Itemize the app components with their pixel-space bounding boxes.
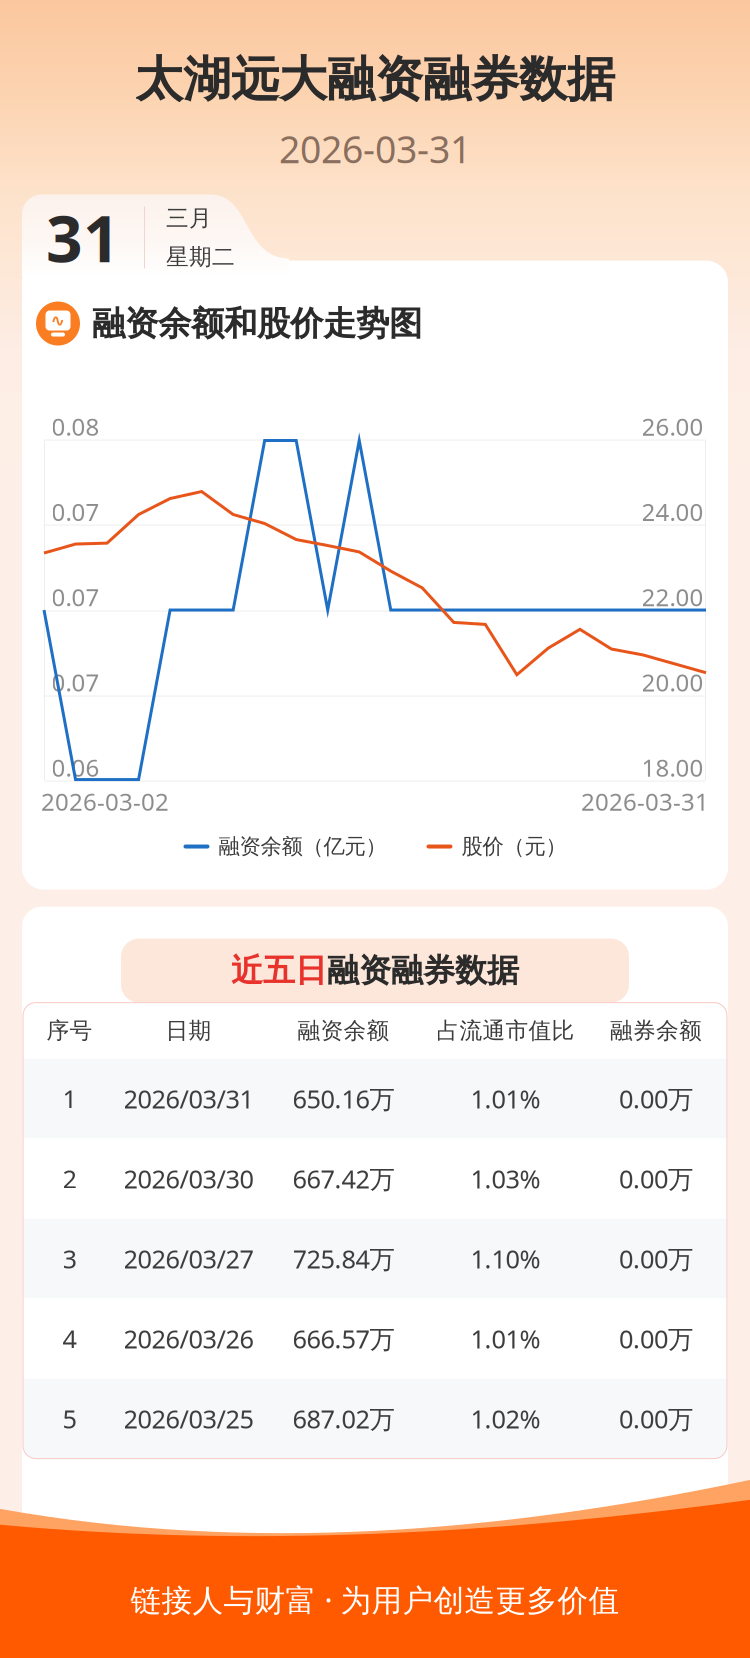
staticText: 2026/03/31 [123, 1082, 253, 1115]
staticText: 2026-03-31 [279, 124, 471, 174]
staticText: 650.16万 [292, 1082, 394, 1115]
staticText: 股价（元） [461, 833, 566, 860]
staticText: 666.57万 [292, 1322, 394, 1355]
staticText: 1.02% [470, 1402, 540, 1435]
staticText: 0.00万 [619, 1402, 693, 1435]
staticText: 1.10% [470, 1242, 540, 1275]
staticText: 2026-03-02 [41, 785, 169, 817]
staticText: 5 [62, 1402, 76, 1435]
staticText: 2026-03-31 [581, 785, 709, 817]
staticText: ∿ [50, 311, 65, 330]
staticText: 2026/03/25 [123, 1402, 253, 1435]
staticText: 2026/03/27 [123, 1242, 253, 1275]
staticText: 融券余额 [610, 1017, 702, 1044]
staticText: 序号 [46, 1017, 92, 1044]
staticText: 0.00万 [619, 1082, 693, 1115]
staticText: 1 [62, 1082, 76, 1115]
staticText: 0.00万 [619, 1162, 693, 1195]
staticText: 31 [46, 195, 120, 280]
staticText: 融资余额 [297, 1017, 389, 1044]
staticText: 4 [62, 1322, 76, 1355]
staticText: 0.06 [51, 752, 99, 783]
staticText: 687.02万 [292, 1402, 394, 1435]
staticText: 0.07 [51, 496, 99, 528]
staticText: 667.42万 [292, 1162, 394, 1195]
staticText: 725.84万 [292, 1242, 394, 1275]
staticText: 占流通市值比 [436, 1017, 574, 1044]
staticText: 1.01% [470, 1082, 540, 1115]
staticText: 日期 [165, 1017, 211, 1044]
staticText: 2 [62, 1162, 76, 1195]
staticText: 链接人与财富 · 为用户创造更多价值 [130, 1579, 619, 1620]
staticText: 融资余额（亿元） [218, 833, 386, 860]
staticText: 0.07 [51, 581, 99, 613]
staticText: 星期二 [166, 243, 235, 271]
staticText: 融资融券数据 [327, 951, 519, 990]
staticText: 近五日 [231, 951, 327, 990]
staticText: 18.00 [641, 752, 703, 783]
staticText: 2026/03/26 [123, 1322, 253, 1355]
staticText: 1.03% [470, 1162, 540, 1195]
staticText: 2026/03/30 [123, 1162, 253, 1195]
staticText: 24.00 [641, 496, 703, 528]
staticText: 0.00万 [619, 1322, 693, 1355]
staticText: 融资余额和股价走势图 [92, 303, 422, 344]
staticText: 20.00 [641, 666, 703, 698]
staticText: 0.00万 [619, 1242, 693, 1275]
staticText: 三月 [166, 204, 212, 232]
staticText: 3 [62, 1242, 76, 1275]
staticText: 1.01% [470, 1322, 540, 1355]
staticText: 0.08 [51, 411, 99, 442]
staticText: 22.00 [641, 581, 703, 613]
staticText: 26.00 [641, 411, 703, 442]
staticText: 太湖远大融资融券数据 [135, 50, 615, 109]
staticText: 0.07 [51, 666, 99, 698]
